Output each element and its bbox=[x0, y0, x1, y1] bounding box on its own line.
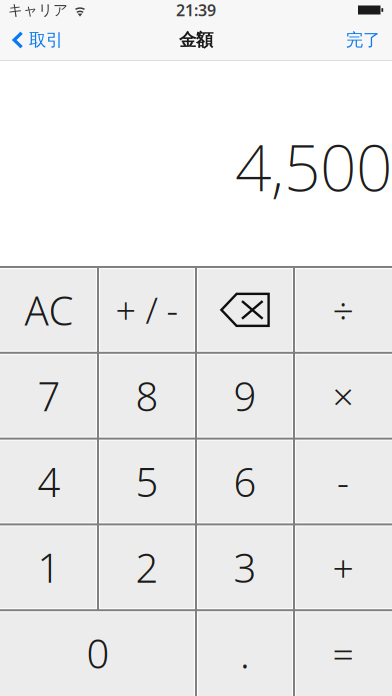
staticText: 21:39 bbox=[176, 0, 216, 21]
staticText: 4,500 bbox=[235, 124, 392, 209]
staticText: 完了 bbox=[346, 29, 380, 51]
button[interactable]: 取引 bbox=[6, 20, 69, 60]
staticText: = bbox=[332, 628, 353, 678]
button[interactable]: Plus minus bbox=[98, 267, 196, 353]
staticText: 1 bbox=[37, 541, 60, 594]
staticText: 金額 bbox=[179, 29, 213, 51]
button[interactable]: Divide bbox=[294, 267, 392, 353]
staticText: 6 bbox=[233, 455, 256, 508]
button[interactable]: 9 bbox=[196, 353, 294, 439]
button[interactable]: 3 bbox=[196, 524, 294, 610]
staticText: ÷ bbox=[332, 285, 353, 335]
staticText: 9 bbox=[233, 369, 256, 422]
button[interactable]: 7 bbox=[0, 353, 98, 439]
button[interactable]: 4 bbox=[0, 439, 98, 524]
button[interactable]: Backspace bbox=[196, 267, 294, 353]
staticText: AC bbox=[24, 283, 73, 336]
button[interactable]: 5 bbox=[98, 439, 196, 524]
button[interactable]: Multiply bbox=[294, 353, 392, 439]
button[interactable]: Plus bbox=[294, 524, 392, 610]
staticText: 3 bbox=[233, 541, 256, 594]
staticText: 0 bbox=[86, 626, 109, 680]
staticText: + bbox=[332, 542, 353, 592]
staticText: 7 bbox=[37, 369, 60, 422]
staticText: + / - bbox=[115, 286, 178, 334]
button[interactable]: 完了 bbox=[340, 20, 386, 60]
staticText: キャリア bbox=[8, 1, 68, 19]
button[interactable]: Equals bbox=[294, 610, 392, 696]
button[interactable]: 1 bbox=[0, 524, 98, 610]
button[interactable]: All clear bbox=[0, 267, 98, 353]
button[interactable]: 6 bbox=[196, 439, 294, 524]
staticText: 2 bbox=[135, 541, 158, 594]
button[interactable]: 0 bbox=[0, 610, 196, 696]
staticText: - bbox=[337, 457, 349, 506]
staticText: . bbox=[240, 626, 250, 680]
button[interactable]: 8 bbox=[98, 353, 196, 439]
button[interactable]: 2 bbox=[98, 524, 196, 610]
staticText: × bbox=[332, 371, 353, 420]
staticText: 8 bbox=[135, 369, 158, 422]
button[interactable]: Decimal point bbox=[196, 610, 294, 696]
staticText: 取引 bbox=[29, 29, 63, 51]
staticText: 5 bbox=[135, 455, 158, 508]
button[interactable]: Minus bbox=[294, 439, 392, 524]
staticText: 4 bbox=[37, 455, 60, 508]
